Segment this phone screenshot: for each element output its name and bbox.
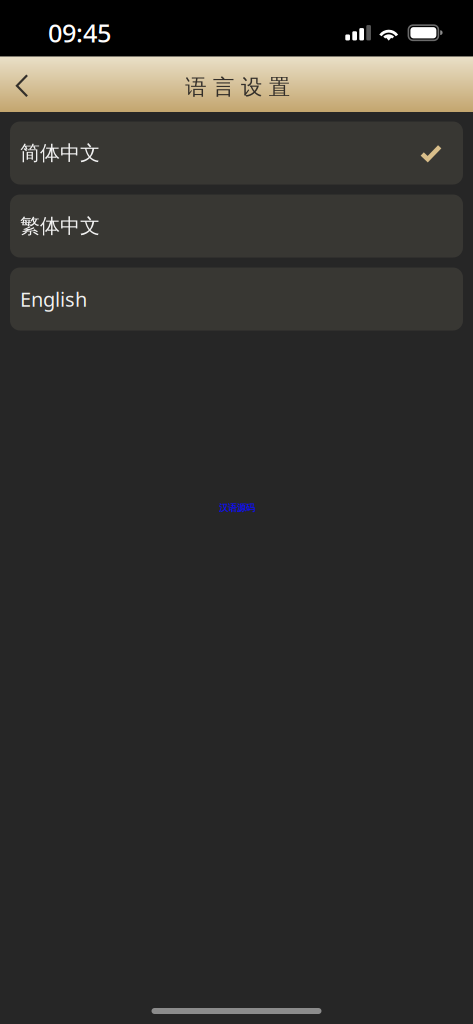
staticText: 繁体中文 [20,214,100,238]
staticText: English [20,286,87,312]
button[interactable]: 繁体中文 [10,194,463,257]
staticText: 语言设置 [185,74,290,100]
staticText: 简体中文 [20,141,100,165]
button[interactable]: English [10,267,463,330]
button[interactable]: 简体中文 [10,121,463,184]
staticText: 汉语源码 [218,502,254,514]
staticText: 09:45 [48,16,111,49]
button[interactable]: Back [0,56,44,112]
